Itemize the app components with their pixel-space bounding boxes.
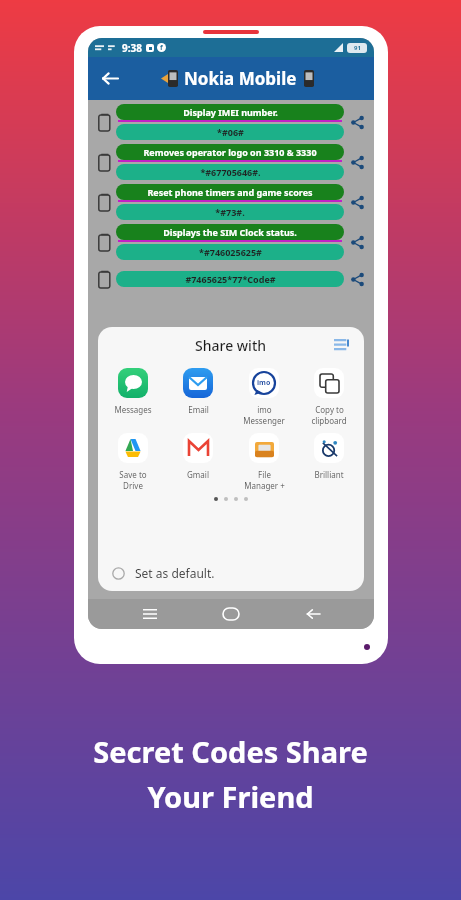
staticText: f bbox=[160, 43, 163, 52]
staticText: Copy to bbox=[315, 404, 344, 415]
button[interactable]: Recents bbox=[130, 599, 170, 629]
staticText: #7465625*77*Code# bbox=[185, 273, 276, 285]
staticText: Messenger bbox=[243, 415, 285, 426]
staticText: Nokia Mobile bbox=[184, 67, 297, 90]
staticText: Manager + bbox=[244, 480, 285, 491]
staticText: Save to bbox=[119, 469, 147, 480]
staticText: Brilliant bbox=[314, 469, 344, 480]
staticText: 9:38 bbox=[122, 41, 142, 55]
staticText: *#73#. bbox=[215, 206, 245, 218]
staticText: Drive bbox=[123, 480, 143, 491]
staticText: Secret Codes Share bbox=[93, 732, 368, 771]
staticText: Removes operator logo on 3310 & 3330 bbox=[143, 146, 317, 158]
staticText: Reset phone timers and game scores bbox=[147, 186, 313, 198]
button[interactable]: Email bbox=[168, 367, 228, 415]
button[interactable]: Reset phone timers and game scores bbox=[88, 184, 374, 220]
button[interactable]: #7465625*77*Code# bbox=[88, 264, 374, 294]
staticText: File bbox=[258, 469, 271, 480]
button[interactable]: Brilliant bbox=[299, 432, 359, 480]
staticText: Set as default. bbox=[135, 565, 215, 581]
staticText: *#67705646#. bbox=[200, 166, 261, 178]
button[interactable]: Set as default. bbox=[98, 555, 364, 591]
button[interactable]: Share bbox=[344, 147, 370, 177]
staticText: Displays the SIM Clock status. bbox=[163, 226, 297, 238]
button[interactable]: Display IMEI number. bbox=[88, 104, 374, 140]
button[interactable]: Share bbox=[344, 227, 370, 257]
staticText: imo bbox=[257, 404, 272, 415]
staticText: clipboard bbox=[311, 415, 347, 426]
button[interactable]: Back bbox=[293, 599, 333, 629]
staticText: *#06# bbox=[217, 126, 244, 138]
button[interactable]: Save to bbox=[103, 432, 163, 491]
staticText: Gmail bbox=[187, 469, 209, 480]
button[interactable]: File bbox=[234, 432, 294, 491]
button[interactable]: Home bbox=[211, 599, 251, 629]
staticText: Share with bbox=[195, 336, 267, 355]
button[interactable]: Gmail bbox=[168, 432, 228, 480]
staticText: Email bbox=[188, 404, 209, 415]
staticText: 91 bbox=[354, 44, 361, 52]
button[interactable]: Share bbox=[344, 107, 370, 137]
button[interactable]: Messages bbox=[103, 367, 163, 415]
staticText: Your Friend bbox=[147, 777, 314, 816]
button[interactable]: Removes operator logo on 3310 & 3330 bbox=[88, 144, 374, 180]
staticText: *#746025625# bbox=[199, 246, 262, 258]
staticText: imo bbox=[257, 378, 271, 388]
staticText: Messages bbox=[114, 404, 152, 415]
button[interactable]: List view bbox=[330, 334, 352, 356]
button[interactable]: Share bbox=[344, 264, 370, 294]
button[interactable]: Copy to bbox=[299, 367, 359, 426]
button[interactable]: Displays the SIM Clock status. bbox=[88, 224, 374, 260]
button[interactable]: imo bbox=[234, 367, 294, 426]
button[interactable]: Back bbox=[88, 57, 131, 100]
button[interactable]: Share bbox=[344, 187, 370, 217]
staticText: Display IMEI number. bbox=[183, 106, 278, 118]
